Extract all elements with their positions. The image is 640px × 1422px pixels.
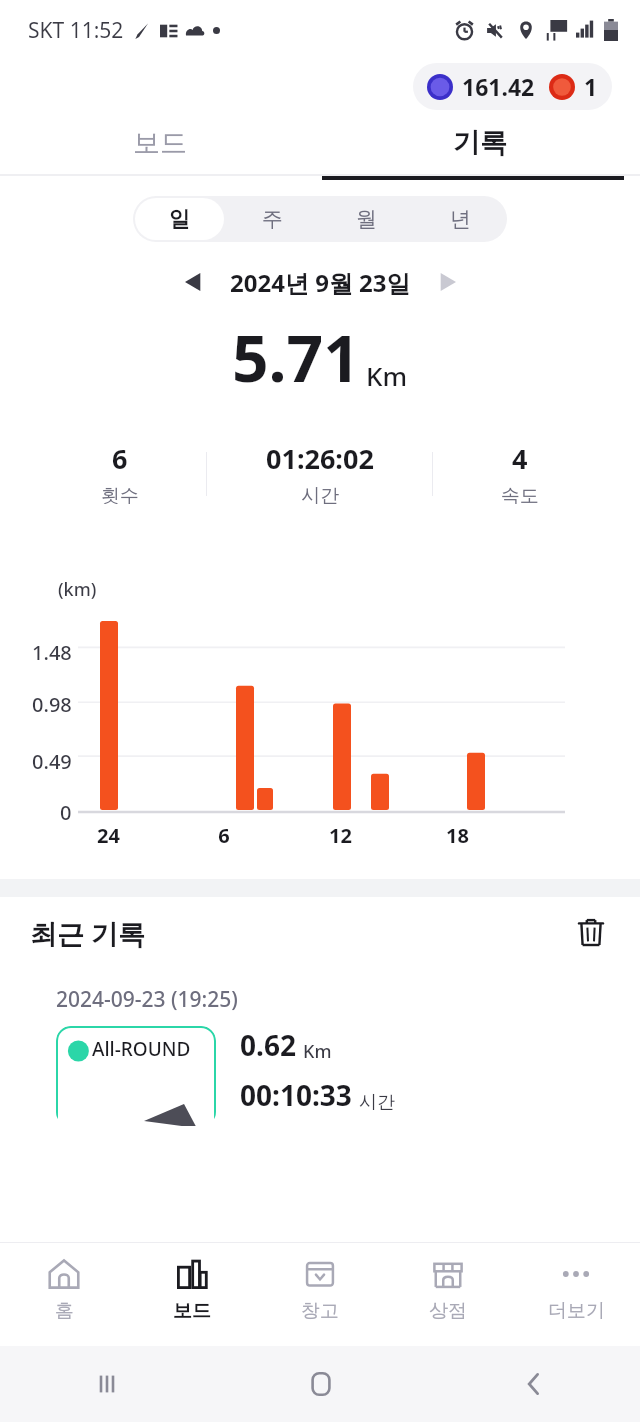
staticText: 6 — [218, 822, 230, 849]
staticText: 1 — [584, 71, 598, 102]
button[interactable]: 주 — [228, 198, 317, 240]
staticText: 보드 — [173, 1299, 211, 1323]
button[interactable]: Next day — [425, 260, 469, 304]
staticText: 01:26:02 — [266, 440, 374, 477]
button[interactable]: 상점 — [384, 1243, 512, 1346]
staticText: 4 — [512, 440, 528, 477]
staticText: 홈 — [55, 1299, 74, 1323]
staticText: 0.98 — [32, 691, 72, 718]
button[interactable]: Delete records — [568, 910, 614, 956]
button[interactable]: 2024-09-23 (19:25) — [34, 969, 606, 1126]
staticText: Km — [366, 358, 408, 393]
staticText: 년 — [450, 206, 471, 232]
staticText: 6 — [112, 440, 128, 477]
staticText: 최근 기록 — [30, 915, 146, 952]
staticText: 일 — [169, 206, 190, 232]
staticText: 더보기 — [548, 1299, 605, 1323]
staticText: 시간 — [301, 484, 339, 508]
staticText: 5.71 — [232, 314, 360, 401]
staticText: 00:10:33 — [240, 1076, 352, 1114]
staticText: 월 — [356, 206, 377, 232]
button[interactable]: Back — [427, 1346, 640, 1422]
button[interactable]: Home — [214, 1346, 427, 1422]
button[interactable]: 년 — [415, 198, 505, 240]
button[interactable]: 161.42 — [413, 63, 612, 110]
button[interactable]: 일 — [135, 198, 224, 240]
button[interactable]: 보드 — [128, 1243, 256, 1346]
staticText: 2024-09-23 (19:25) — [56, 985, 238, 1014]
staticText: 0.49 — [32, 748, 72, 775]
staticText: 12 — [329, 822, 352, 849]
staticText: 횟수 — [101, 484, 139, 508]
staticText: 창고 — [301, 1299, 339, 1323]
staticText: 18 — [446, 822, 469, 849]
button[interactable]: 더보기 — [512, 1243, 640, 1346]
staticText: (km) — [58, 577, 97, 602]
button[interactable]: 보드 — [0, 112, 320, 174]
button[interactable]: Previous day — [172, 260, 216, 304]
staticText: 시간 — [359, 1091, 395, 1114]
staticText: 주 — [262, 206, 283, 232]
staticText: All-ROUND — [92, 1036, 191, 1062]
button[interactable]: 기록 — [320, 112, 640, 174]
staticText: Km — [303, 1039, 332, 1064]
button[interactable]: 월 — [321, 198, 411, 240]
staticText: SKT 11:52 — [28, 16, 124, 45]
staticText: 속도 — [501, 484, 539, 508]
button[interactable]: Recents — [0, 1346, 214, 1422]
staticText: 보드 — [133, 126, 187, 160]
staticText: 상점 — [429, 1299, 467, 1323]
button[interactable]: 창고 — [256, 1243, 384, 1346]
staticText: 161.42 — [462, 71, 535, 102]
staticText: 0.62 — [240, 1026, 296, 1064]
button[interactable]: 홈 — [0, 1243, 128, 1346]
staticText: 24 — [97, 822, 120, 849]
staticText: 0 — [60, 799, 72, 826]
staticText: 2024년 9월 23일 — [230, 266, 411, 299]
staticText: 1.48 — [32, 639, 72, 666]
button[interactable]: 6 — [34, 419, 606, 529]
staticText: 기록 — [453, 126, 507, 160]
